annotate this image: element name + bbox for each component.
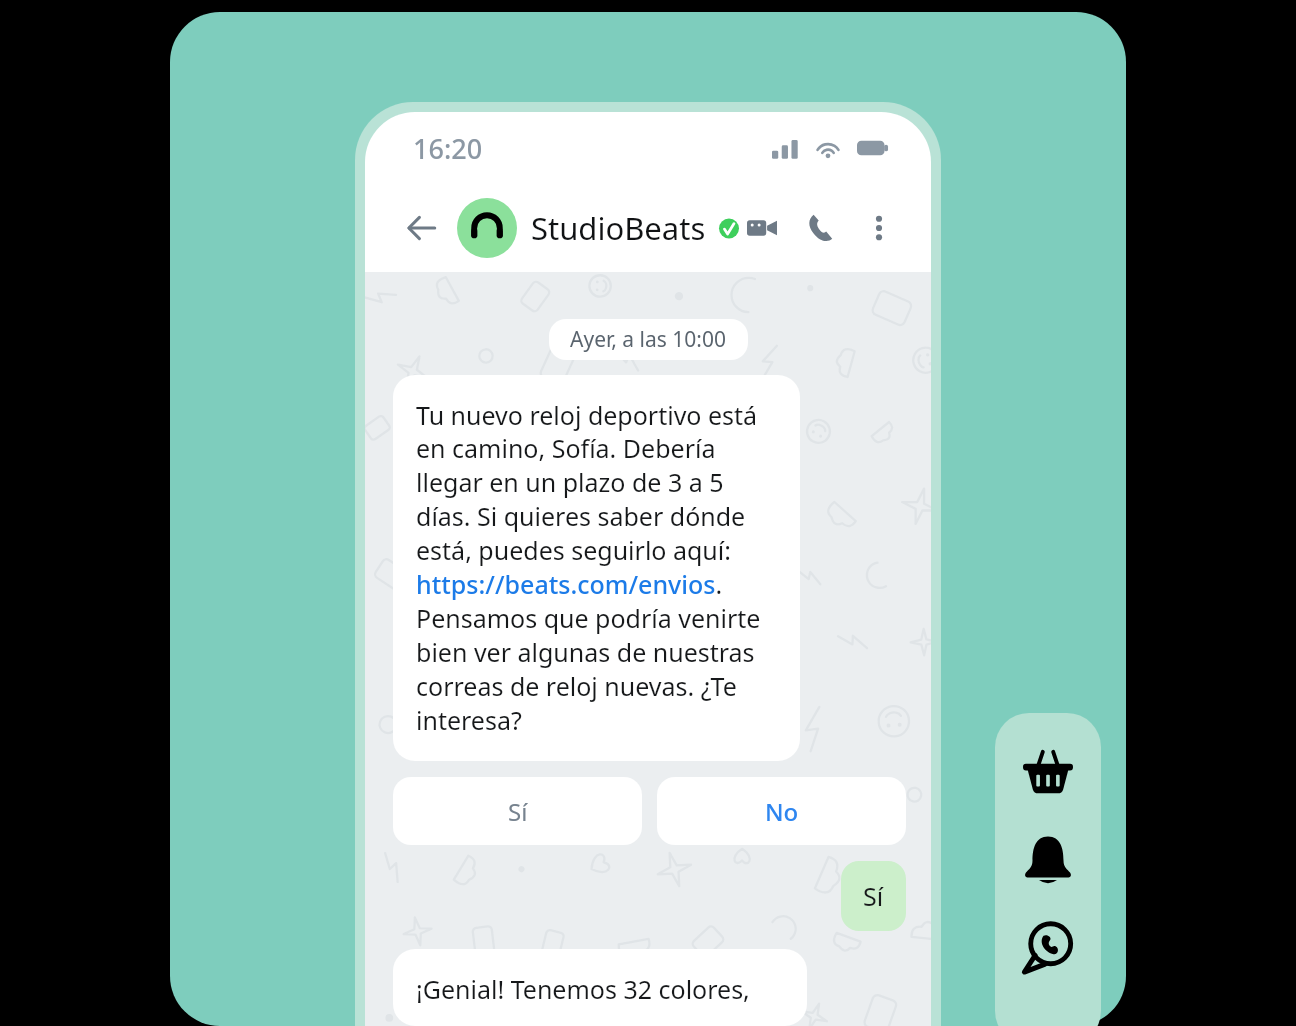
staticText: Sí	[863, 879, 884, 913]
button[interactable]: Voice call	[799, 205, 845, 251]
button[interactable]: Shopping basket	[1014, 737, 1082, 805]
staticText: Ayer, a las 10:00	[570, 325, 727, 354]
button[interactable]: Tu nuevo reloj deportivo está en camino,…	[393, 375, 800, 761]
staticText: 16:20	[413, 130, 483, 167]
button[interactable]: Profile photo	[457, 198, 517, 258]
button[interactable]: More options	[857, 206, 901, 250]
staticText: Tu nuevo reloj deportivo está en camino,…	[416, 398, 777, 738]
button[interactable]: Video call	[739, 205, 785, 251]
button[interactable]: Notifications	[1014, 825, 1082, 893]
button[interactable]: Sí	[393, 777, 642, 845]
staticText: No	[765, 795, 799, 828]
staticText: ¡Genial! Tenemos 32 colores, así que seg…	[416, 972, 784, 1003]
button[interactable]: Ayer, a las 10:00	[549, 319, 748, 360]
button[interactable]: Back	[397, 204, 445, 252]
button[interactable]: Sí	[841, 861, 906, 931]
staticText: Sí	[508, 795, 528, 828]
button[interactable]: No	[657, 777, 906, 845]
button[interactable]: StudioBeats	[531, 207, 739, 249]
button[interactable]: WhatsApp	[1014, 913, 1082, 981]
staticText: StudioBeats	[531, 207, 706, 249]
button[interactable]: ¡Genial! Tenemos 32 colores, así que seg…	[393, 949, 807, 1026]
